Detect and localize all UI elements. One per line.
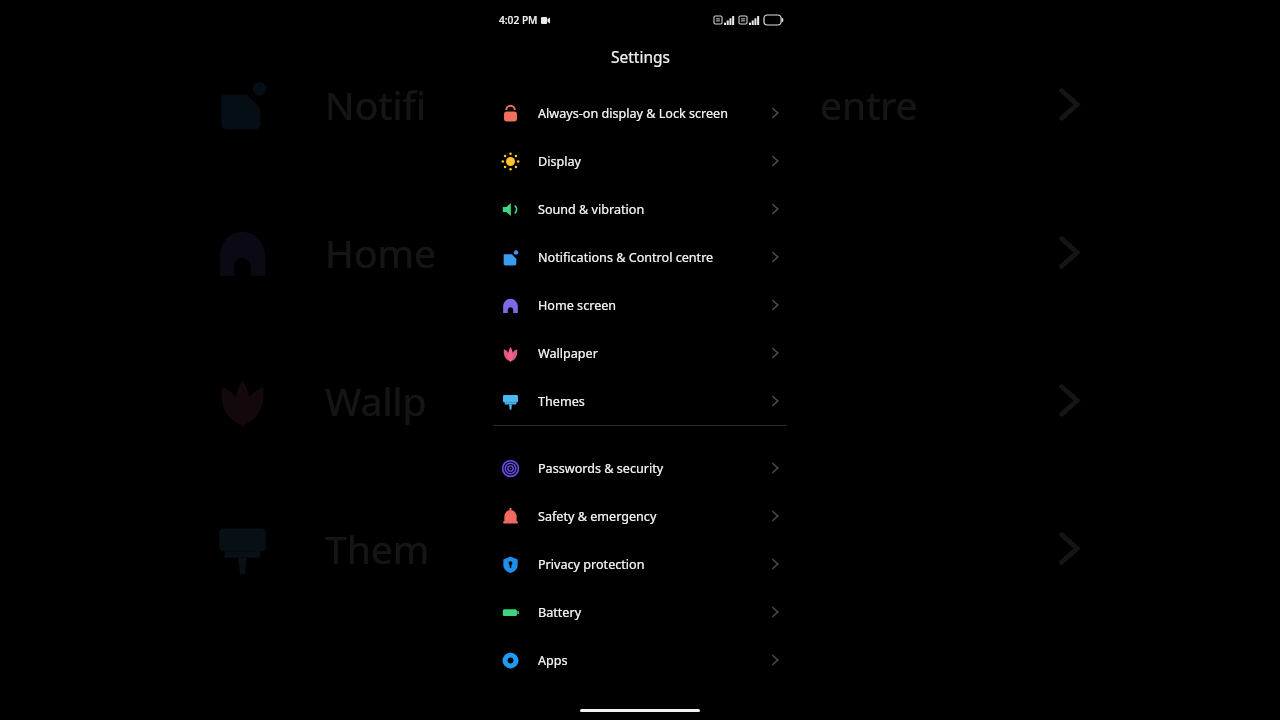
staticText: Privacy protection: [538, 556, 645, 573]
staticText: Settings: [611, 46, 670, 67]
button[interactable]: Wallpaper: [473, 329, 807, 377]
staticText: Wallpaper: [538, 345, 598, 362]
button[interactable]: Sound & vibration: [473, 185, 807, 233]
button[interactable]: Display: [473, 137, 807, 185]
button[interactable]: Battery: [473, 588, 807, 636]
staticText: Battery: [538, 604, 582, 621]
staticText: Display: [538, 153, 581, 170]
staticText: Home screen: [538, 297, 617, 314]
staticText: 4:02 PM: [499, 13, 538, 27]
staticText: Safety & emergency: [538, 508, 657, 525]
staticText: Themes: [538, 393, 585, 410]
button[interactable]: Apps: [473, 636, 807, 684]
button[interactable]: Safety & emergency: [473, 492, 807, 540]
button[interactable]: Always-on display & Lock screen: [473, 89, 807, 137]
staticText: Always-on display & Lock screen: [538, 105, 729, 122]
staticText: Notifi: [325, 78, 426, 131]
staticText: Them: [325, 522, 430, 575]
staticText: entre: [820, 78, 918, 131]
button[interactable]: Privacy protection: [473, 540, 807, 588]
staticText: Notifications & Control centre: [538, 249, 714, 266]
button[interactable]: Home screen: [473, 281, 807, 329]
button[interactable]: Notifications & Control centre: [473, 233, 807, 281]
staticText: Sound & vibration: [538, 201, 645, 218]
button[interactable]: Themes: [473, 377, 807, 425]
button[interactable]: Passwords & security: [473, 444, 807, 492]
staticText: Apps: [538, 652, 568, 669]
staticText: Passwords & security: [538, 460, 664, 477]
staticText: Wallp: [325, 374, 427, 427]
staticText: Home: [325, 226, 437, 279]
